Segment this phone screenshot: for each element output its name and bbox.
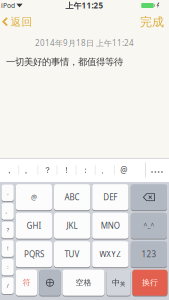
button[interactable]: ？ (38, 159, 56, 181)
staticText: ： (82, 165, 90, 175)
button[interactable]: ， (0, 159, 18, 181)
button[interactable]: 空格 (62, 269, 104, 296)
button[interactable]: TUV (54, 241, 90, 268)
button[interactable]: 下一个键盘 (39, 269, 61, 296)
button[interactable]: JKL (54, 212, 90, 239)
staticText: 上午11:25 (65, 0, 103, 11)
staticText: 空格 (75, 278, 91, 288)
staticText: ABC (65, 192, 80, 202)
button[interactable]: @ (16, 184, 52, 211)
staticText: PQRS (24, 249, 44, 259)
button[interactable]: 完成 (139, 14, 165, 30)
button[interactable]: 中/英 (106, 269, 130, 296)
button[interactable]: / (1, 277, 14, 294)
button[interactable]: 换行 (132, 269, 167, 296)
staticText: 换行 (142, 278, 158, 288)
button[interactable]: @ (115, 159, 133, 181)
button[interactable]: 。 (19, 159, 37, 181)
staticText: iPod (1, 1, 15, 10)
staticText: @ (31, 193, 37, 202)
staticText: ， (5, 165, 13, 175)
staticText: ！ (5, 245, 10, 252)
button[interactable]: MNO (92, 212, 128, 239)
button[interactable]: ： (1, 258, 14, 276)
button[interactable]: ^_^ (131, 212, 167, 239)
staticText: / (7, 282, 9, 289)
button[interactable]: 返回 (0, 14, 34, 30)
staticText: 123 (141, 249, 156, 259)
button[interactable]: ？ (1, 221, 14, 239)
button[interactable]: WXYZ (92, 241, 128, 268)
button[interactable]: 符 (16, 269, 37, 296)
staticText: ？ (5, 227, 10, 233)
staticText: 。 (24, 165, 32, 175)
staticText: MNO (101, 220, 120, 231)
staticText: 符 (22, 278, 30, 288)
button[interactable]: 。 (1, 203, 14, 220)
staticText: 返回 (10, 15, 32, 28)
button[interactable]: ， (1, 184, 14, 202)
staticText: 。 (5, 208, 10, 215)
button[interactable]: 123 (131, 241, 167, 268)
button[interactable]: 、 (96, 159, 114, 181)
staticText: WXYZ (99, 249, 121, 259)
staticText: GHI (26, 220, 41, 231)
staticText: 、 (101, 165, 109, 175)
staticText: 一切美好的事情，都值得等待 (6, 56, 123, 68)
button[interactable]: PQRS (16, 241, 52, 268)
staticText: DEF (103, 192, 117, 202)
button[interactable]: GHI (16, 212, 52, 239)
button[interactable]: ： (77, 159, 95, 181)
staticText: ！ (62, 165, 70, 175)
staticText: ， (5, 189, 10, 196)
staticText: JKL (67, 220, 78, 231)
button[interactable]: 删除 (131, 184, 167, 211)
staticText: 中英 (112, 278, 125, 288)
button[interactable]: DEF (92, 184, 128, 211)
staticText: TUV (65, 249, 80, 259)
button[interactable]: ！ (57, 159, 75, 181)
staticText: @ (120, 165, 127, 175)
staticText: ： (5, 264, 10, 270)
button[interactable]: ABC (54, 184, 90, 211)
staticText: ？ (43, 165, 51, 175)
staticText: 2014年9月18日 上午11:24 (35, 38, 134, 48)
button[interactable]: 更多候选 (146, 161, 168, 183)
staticText: ^_^ (143, 221, 154, 230)
staticText: 完成 (140, 15, 164, 29)
button[interactable]: ！ (1, 240, 14, 257)
